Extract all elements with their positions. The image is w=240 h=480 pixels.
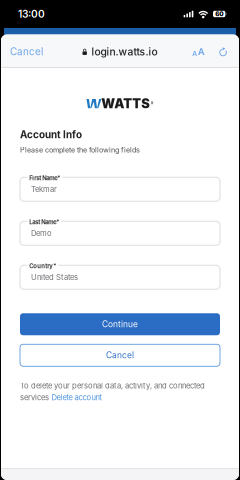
- staticText: Country*: [29, 262, 56, 270]
- staticText: Cancel: [106, 350, 134, 360]
- staticText: 60: [215, 10, 223, 18]
- staticText: Please complete the following fields: [20, 145, 140, 154]
- staticText: services: [20, 393, 49, 402]
- staticText: Cancel: [10, 46, 43, 58]
- button[interactable]: Reload page: [216, 36, 229, 66]
- staticText: Account Info: [20, 129, 82, 140]
- staticText: Demo: [31, 229, 52, 238]
- button[interactable]: Continue: [20, 313, 220, 335]
- staticText: 13:00: [18, 8, 45, 20]
- button[interactable]: Delete account: [51, 393, 101, 402]
- staticText: A: [198, 46, 205, 57]
- staticText: Delete account: [51, 393, 101, 402]
- staticText: ®: [150, 101, 153, 106]
- staticText: WATTS: [101, 96, 150, 111]
- staticText: First Name*: [29, 174, 60, 182]
- staticText: login.watts.io: [92, 45, 158, 58]
- button[interactable]: Text size: [190, 36, 206, 66]
- staticText: Last Name*: [29, 218, 59, 226]
- staticText: Tekmar: [31, 185, 57, 194]
- staticText: United States: [31, 273, 78, 282]
- staticText: Continue: [102, 319, 138, 329]
- button[interactable]: Cancel: [1, 36, 49, 66]
- staticText: A: [192, 49, 197, 58]
- staticText: To delete your personal data, activity, …: [20, 381, 205, 390]
- button[interactable]: Cancel: [20, 344, 220, 366]
